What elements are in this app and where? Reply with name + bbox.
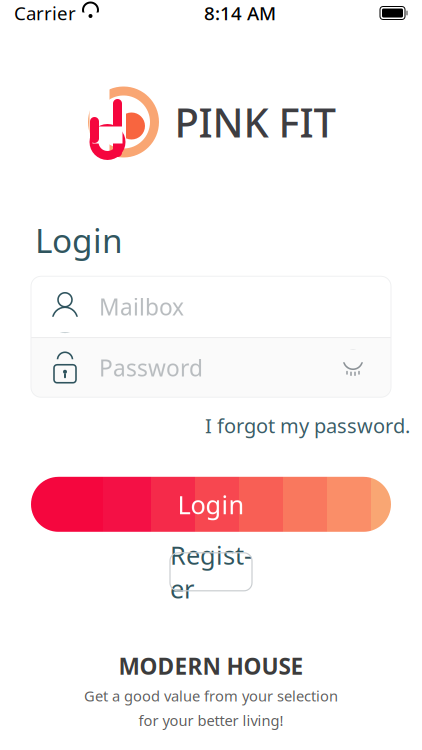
staticText: 8:14 AM — [204, 1, 276, 25]
button[interactable]: I forgot my password. — [205, 412, 410, 439]
staticText: Mailbox — [99, 292, 184, 322]
staticText: I forgot my password. — [205, 412, 410, 439]
button[interactable]: Password — [31, 338, 391, 397]
button[interactable]: Login — [31, 477, 391, 532]
staticText: Register — [170, 538, 252, 605]
staticText: Get a good value from your selection — [84, 686, 338, 705]
staticText: Login — [35, 218, 123, 262]
staticText: Password — [99, 353, 203, 383]
staticText: Carrier — [14, 1, 76, 25]
staticText: MODERN HOUSE — [118, 651, 303, 681]
staticText: for your better living! — [138, 710, 283, 730]
staticText: PINK FIT — [174, 95, 335, 148]
button[interactable]: Register — [170, 553, 252, 591]
staticText: Login — [177, 487, 244, 521]
button[interactable]: Mailbox — [31, 276, 391, 337]
